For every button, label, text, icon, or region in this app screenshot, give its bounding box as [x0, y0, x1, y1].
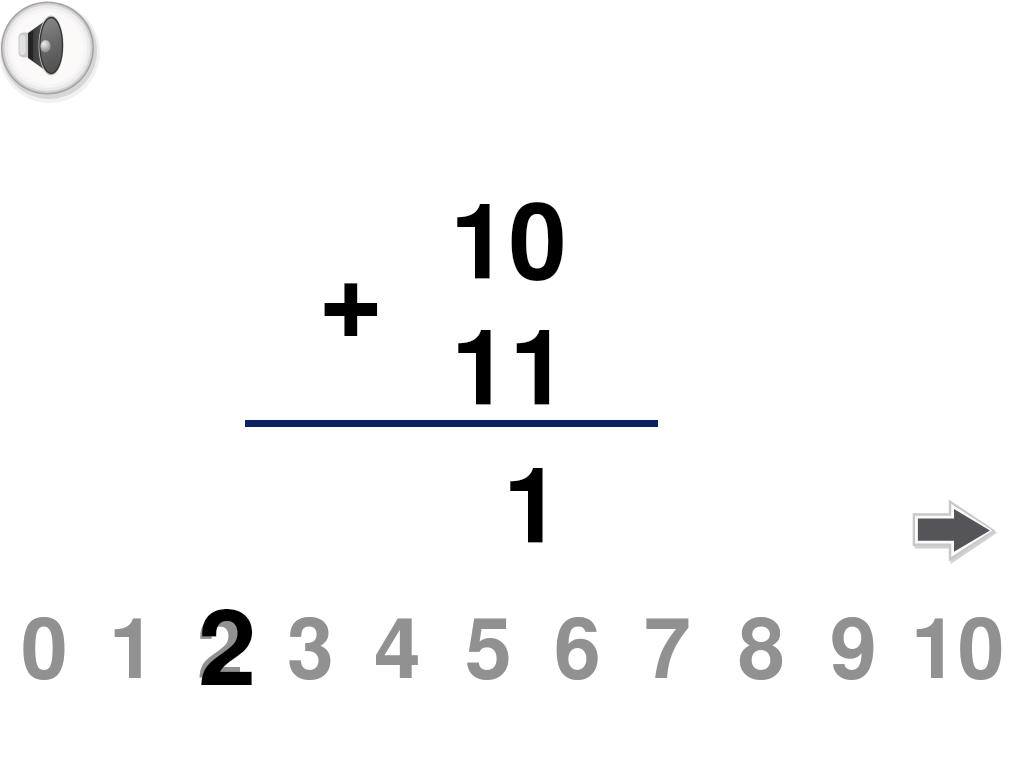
staticText: 5	[465, 611, 512, 695]
button[interactable]: 0	[18, 606, 106, 690]
button[interactable]: 9	[827, 606, 915, 690]
staticText: 1	[503, 459, 562, 564]
staticText: +	[319, 248, 383, 357]
staticText: 11	[451, 321, 568, 426]
button[interactable]: 4	[371, 606, 459, 690]
staticText: 8	[738, 611, 785, 695]
staticText: 2	[198, 601, 257, 706]
button[interactable]: 8	[735, 606, 823, 690]
button[interactable]: 3	[284, 606, 372, 690]
staticText: 6	[554, 611, 601, 695]
staticText: 3	[287, 611, 334, 695]
button[interactable]: Play sound	[0, 0, 100, 100]
button[interactable]: Next	[906, 492, 1002, 572]
staticText: 7	[644, 611, 691, 695]
staticText: 2	[197, 611, 244, 695]
button[interactable]: 10	[908, 606, 1002, 690]
button[interactable]: 6	[551, 606, 639, 690]
staticText: 4	[374, 611, 421, 695]
staticText: 0	[21, 611, 68, 695]
staticText: 10	[911, 611, 1005, 695]
staticText: 9	[830, 611, 877, 695]
button[interactable]: 7	[641, 606, 729, 690]
staticText: 1	[109, 611, 156, 695]
button[interactable]: 2	[194, 606, 282, 690]
button[interactable]: 1	[106, 606, 194, 690]
staticText: 10	[450, 195, 567, 300]
button[interactable]: 5	[462, 606, 550, 690]
